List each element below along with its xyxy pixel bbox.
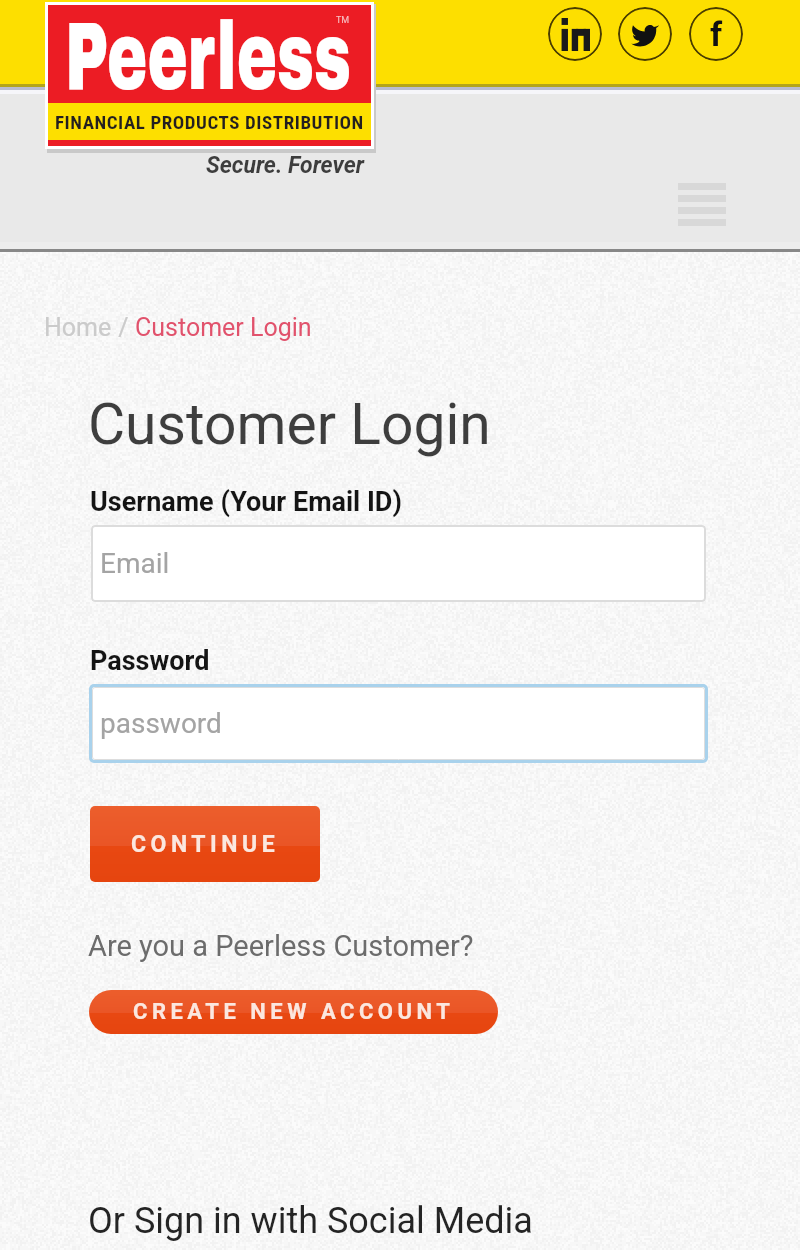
staticText: Username (Your Email ID)	[90, 486, 402, 518]
staticText: TM	[336, 15, 350, 26]
button[interactable]: Menu	[678, 183, 726, 230]
staticText: FINANCIAL PRODUCTS DISTRIBUTION	[55, 111, 364, 133]
staticText: Customer Login	[135, 313, 312, 342]
staticText: CONTINUE	[131, 831, 280, 858]
button[interactable]: Email	[91, 525, 706, 602]
staticText: Are you a Peerless Customer?	[88, 929, 474, 963]
button[interactable]: password	[89, 684, 708, 763]
staticText: Peerless	[65, 5, 351, 109]
button[interactable]: Facebook	[689, 7, 743, 61]
button[interactable]: Twitter	[618, 7, 672, 61]
staticText: password	[100, 707, 222, 740]
button[interactable]: CONTINUE	[90, 806, 320, 882]
button[interactable]: Home	[44, 313, 112, 342]
staticText: Customer Login	[88, 391, 491, 458]
button[interactable]: Peerless	[45, 2, 374, 149]
staticText: Email	[100, 547, 170, 580]
staticText: Secure. Forever	[206, 152, 364, 179]
button[interactable]: CREATE NEW ACCOUNT	[89, 990, 498, 1034]
staticText: CREATE NEW ACCOUNT	[133, 999, 455, 1025]
staticText: f	[710, 14, 723, 54]
staticText: Or Sign in with Social Media	[88, 1200, 533, 1242]
staticText: /	[112, 313, 135, 342]
staticText: Password	[90, 645, 210, 677]
button[interactable]: LinkedIn	[548, 7, 602, 61]
